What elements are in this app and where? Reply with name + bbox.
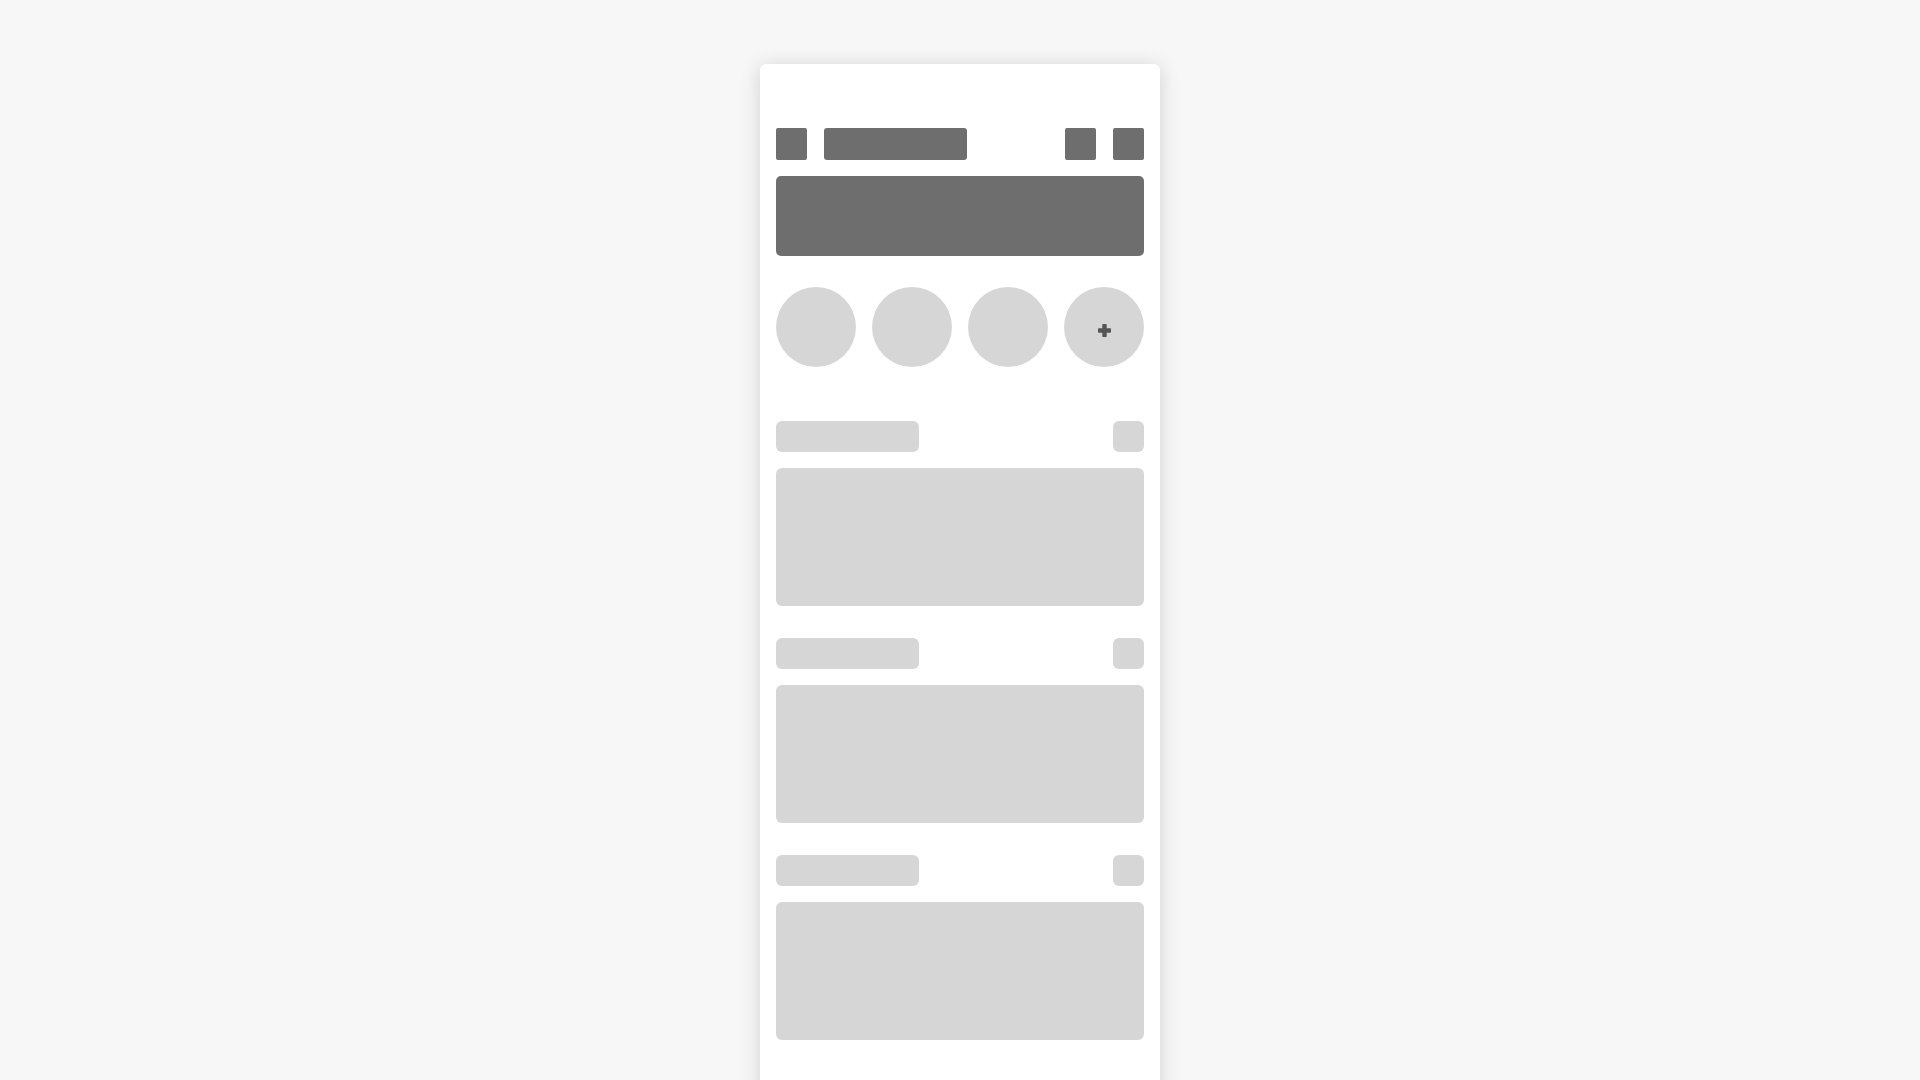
- button[interactable]: Featured banner: [776, 176, 1144, 256]
- button[interactable]: See all: [1113, 855, 1144, 886]
- button[interactable]: Add story: [1064, 287, 1144, 367]
- button[interactable]: Story: [968, 287, 1048, 367]
- button[interactable]: Navigation menu: [776, 128, 807, 160]
- button[interactable]: See all: [1113, 638, 1144, 669]
- button[interactable]: Story: [872, 287, 952, 367]
- button[interactable]: More options: [1113, 128, 1144, 160]
- button[interactable]: Search: [1065, 128, 1096, 160]
- button[interactable]: See all: [1113, 421, 1144, 452]
- button[interactable]: Story: [776, 287, 856, 367]
